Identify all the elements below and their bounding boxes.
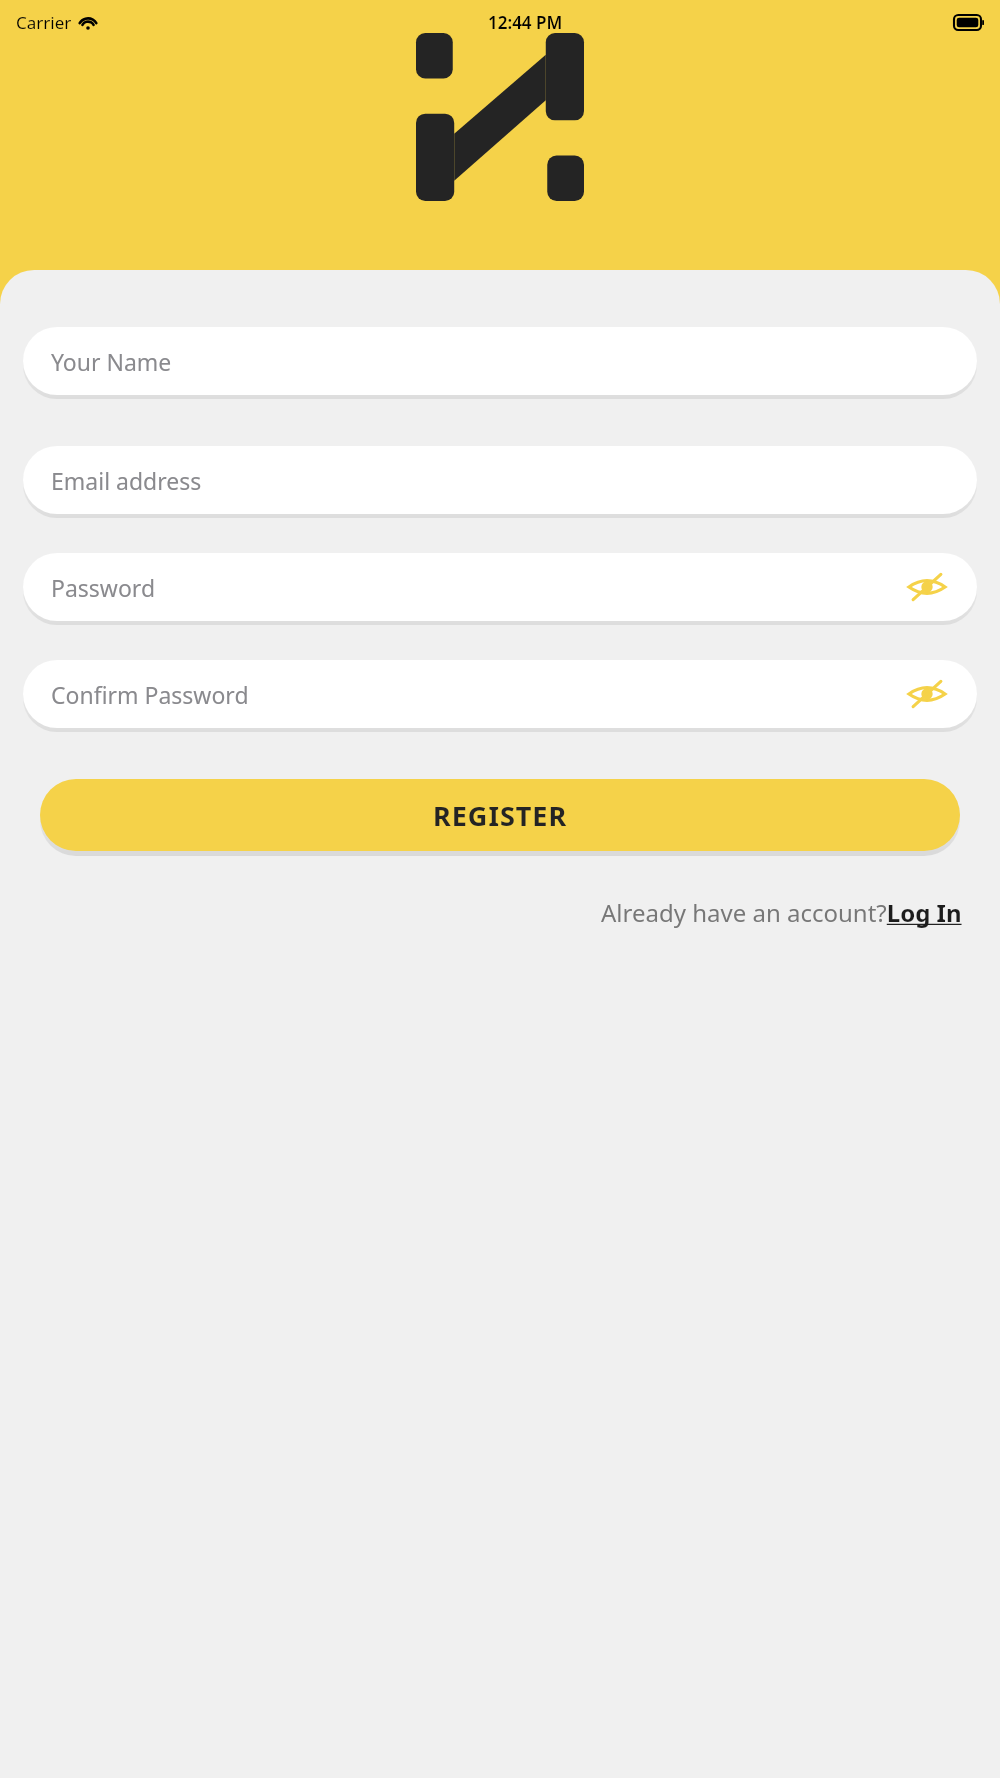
button[interactable]: Password [23,553,977,621]
staticText: REGISTER [433,797,568,834]
staticText: 12:44 PM [488,11,563,34]
staticText: Password [51,572,156,603]
staticText: Email address [51,465,202,496]
staticText: Confirm Password [51,679,249,710]
staticText: Carrier [16,11,72,34]
button[interactable]: Show password [905,565,949,609]
button[interactable]: Show password [905,672,949,716]
button[interactable]: Your Name [23,327,977,395]
button[interactable]: REGISTER [40,779,960,851]
button[interactable]: Already have an account?Log In [601,896,962,929]
staticText: Your Name [51,346,172,377]
staticText: Already have an account?Log In [601,896,962,929]
button[interactable]: Email address [23,446,977,514]
button[interactable]: Confirm Password [23,660,977,728]
